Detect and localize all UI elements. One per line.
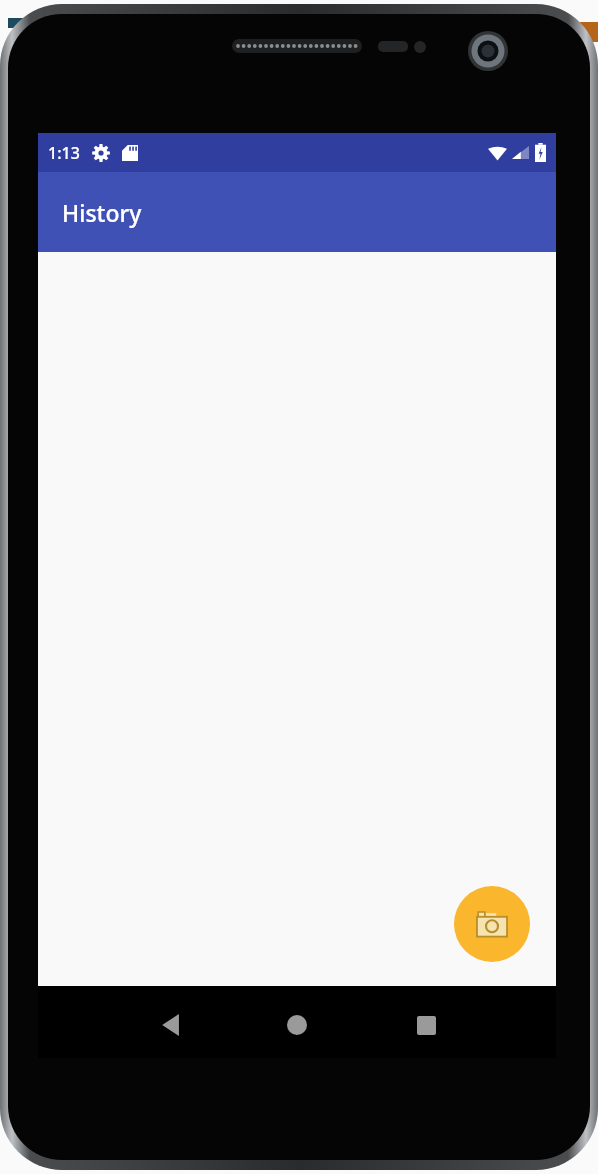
button[interactable]: Back [143, 997, 199, 1053]
staticText: 1:13 [48, 142, 80, 164]
button[interactable]: Home [269, 997, 325, 1053]
button[interactable]: Recent apps [398, 997, 454, 1053]
button[interactable]: Take photo [454, 886, 530, 962]
staticText: History [62, 197, 142, 228]
